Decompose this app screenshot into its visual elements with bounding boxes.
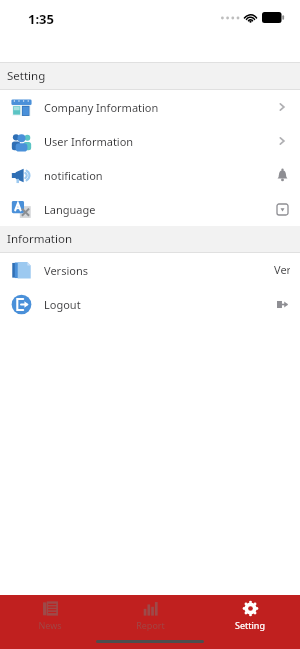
- staticText: Language: [44, 202, 96, 217]
- staticText: Information: [7, 231, 73, 247]
- button[interactable]: Logout: [0, 287, 300, 321]
- button[interactable]: Versions: [0, 253, 300, 287]
- button[interactable]: Report: [100, 595, 200, 639]
- staticText: News: [38, 619, 62, 631]
- staticText: Ver.1.0: [274, 262, 290, 278]
- button[interactable]: Company Information: [0, 90, 300, 124]
- staticText: Logout: [44, 297, 81, 312]
- staticText: User Information: [44, 134, 134, 149]
- staticText: 1:35: [28, 10, 54, 28]
- staticText: Setting: [235, 619, 265, 631]
- staticText: Setting: [7, 68, 46, 84]
- button[interactable]: Language: [0, 192, 300, 226]
- button[interactable]: Setting: [200, 595, 300, 639]
- button[interactable]: User Information: [0, 124, 300, 158]
- staticText: Versions: [44, 263, 88, 278]
- staticText: Report: [136, 619, 165, 631]
- staticText: notification: [44, 168, 103, 183]
- staticText: Company Information: [44, 100, 159, 115]
- button[interactable]: notification: [0, 158, 300, 192]
- button[interactable]: News: [0, 595, 100, 639]
